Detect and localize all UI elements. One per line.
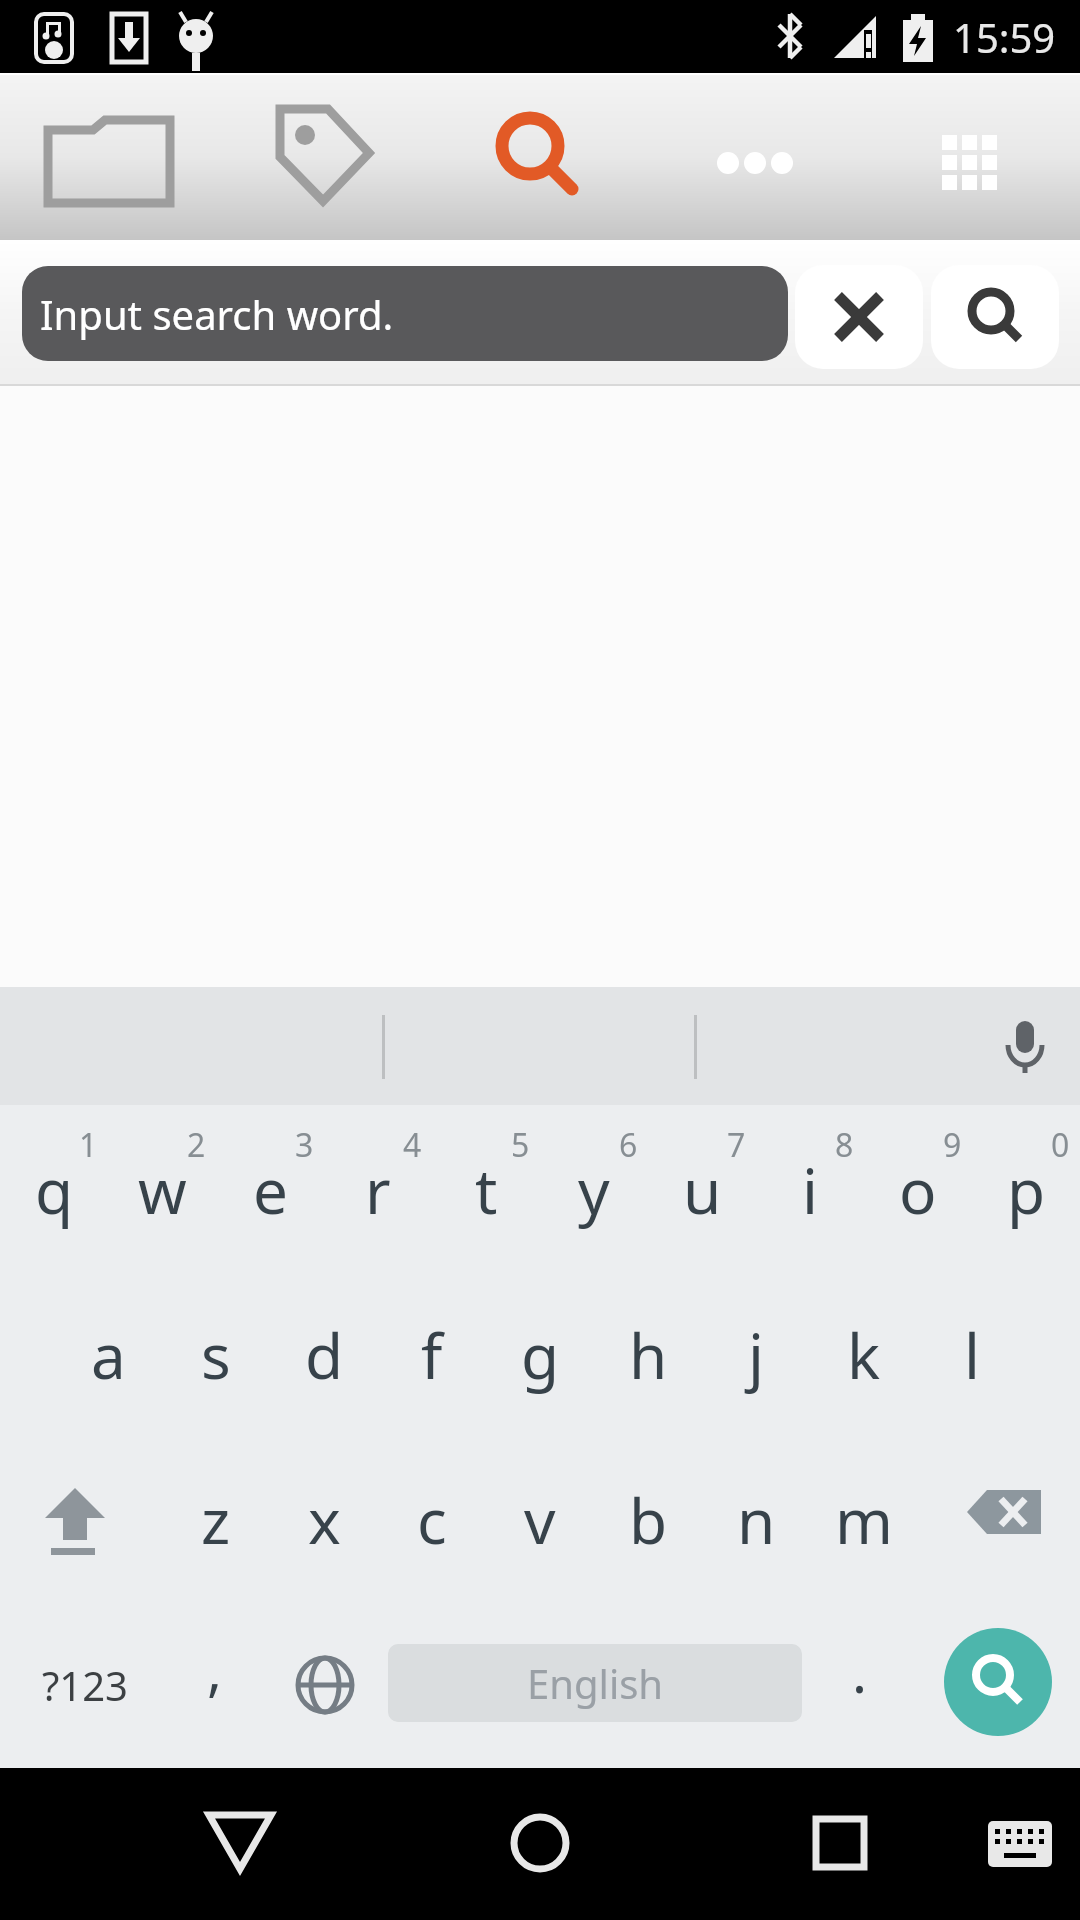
staticText: 15:59	[953, 10, 1056, 64]
button[interactable]: .	[810, 1615, 910, 1755]
staticText: h	[629, 1313, 668, 1397]
staticText: l	[964, 1313, 980, 1397]
staticText: c	[417, 1478, 447, 1562]
staticText: 5	[511, 1123, 530, 1167]
staticText: 8	[835, 1123, 854, 1167]
button[interactable]: a	[54, 1272, 162, 1438]
button[interactable]	[944, 1628, 1052, 1736]
button[interactable]: o	[864, 1107, 972, 1273]
button[interactable]	[960, 1783, 1080, 1903]
staticText: u	[683, 1148, 722, 1232]
staticText: j	[748, 1313, 764, 1397]
staticText: r	[365, 1148, 391, 1232]
button[interactable]: e	[216, 1107, 324, 1273]
button[interactable]: y	[540, 1107, 648, 1273]
staticText: k	[847, 1313, 881, 1397]
staticText: a	[91, 1313, 126, 1397]
staticText: i	[802, 1148, 818, 1232]
button[interactable]: k	[810, 1272, 918, 1438]
button[interactable]: z	[162, 1437, 270, 1603]
button[interactable]: b	[594, 1437, 702, 1603]
button[interactable]	[680, 98, 830, 218]
staticText: o	[899, 1148, 937, 1232]
button[interactable]: j	[702, 1272, 810, 1438]
button[interactable]	[255, 95, 390, 215]
staticText: 4	[403, 1123, 422, 1167]
button[interactable]: l	[918, 1272, 1026, 1438]
staticText: x	[308, 1478, 341, 1562]
staticText: 3	[295, 1123, 314, 1167]
staticText: ?123	[42, 1658, 128, 1712]
button[interactable]: w	[108, 1107, 216, 1273]
staticText: q	[35, 1148, 74, 1232]
button[interactable]: x	[270, 1437, 378, 1603]
button[interactable]	[270, 1615, 380, 1755]
button[interactable]: d	[270, 1272, 378, 1438]
staticText: m	[835, 1478, 893, 1562]
staticText: 9	[943, 1123, 962, 1167]
button[interactable]	[470, 88, 605, 218]
button[interactable]: q	[0, 1107, 108, 1273]
button[interactable]	[780, 1783, 900, 1903]
button[interactable]	[180, 1783, 300, 1903]
staticText: ,	[207, 1631, 223, 1707]
staticText: y	[578, 1148, 610, 1232]
button[interactable]	[795, 265, 923, 369]
staticText: 1	[79, 1123, 98, 1167]
button[interactable]: f	[378, 1272, 486, 1438]
staticText: d	[305, 1313, 344, 1397]
button[interactable]: m	[810, 1437, 918, 1603]
button[interactable]: r	[324, 1107, 432, 1273]
staticText: Input search word.	[40, 287, 394, 341]
button[interactable]: u	[648, 1107, 756, 1273]
button[interactable]	[930, 1437, 1080, 1603]
button[interactable]: ?123	[20, 1615, 150, 1755]
staticText: w	[138, 1148, 187, 1232]
staticText: f	[421, 1313, 443, 1397]
button[interactable]	[0, 1437, 150, 1603]
staticText: .	[852, 1633, 868, 1709]
staticText: g	[521, 1313, 560, 1397]
staticText: n	[737, 1478, 776, 1562]
button[interactable]: i	[756, 1107, 864, 1273]
button[interactable]: c	[378, 1437, 486, 1603]
button[interactable]	[985, 1007, 1065, 1087]
button[interactable]: ,	[160, 1615, 270, 1755]
staticText: 7	[727, 1123, 746, 1167]
button[interactable]: Input search word.	[22, 266, 788, 361]
staticText: 2	[187, 1123, 206, 1167]
staticText: v	[524, 1478, 556, 1562]
staticText: t	[475, 1148, 498, 1232]
button[interactable]: p	[972, 1107, 1080, 1273]
button[interactable]	[931, 265, 1059, 369]
button[interactable]	[33, 98, 183, 218]
button[interactable]: h	[594, 1272, 702, 1438]
button[interactable]: g	[486, 1272, 594, 1438]
button[interactable]: t	[432, 1107, 540, 1273]
staticText: 0	[1051, 1123, 1070, 1167]
button[interactable]	[895, 98, 1045, 218]
staticText: z	[201, 1478, 231, 1562]
staticText: English	[527, 1656, 664, 1710]
button[interactable]: English	[388, 1644, 802, 1722]
staticText: b	[629, 1478, 668, 1562]
staticText: e	[253, 1148, 288, 1232]
button[interactable]: n	[702, 1437, 810, 1603]
staticText: p	[1007, 1148, 1046, 1232]
button[interactable]	[480, 1783, 600, 1903]
button[interactable]: s	[162, 1272, 270, 1438]
staticText: s	[201, 1313, 231, 1397]
staticText: 6	[619, 1123, 638, 1167]
button[interactable]: v	[486, 1437, 594, 1603]
